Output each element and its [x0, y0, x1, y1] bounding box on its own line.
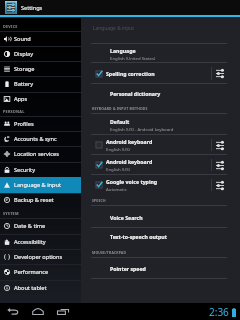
staticText: Google voice typing [106, 178, 158, 185]
staticText: Sound [14, 35, 31, 43]
button[interactable]: Apps [0, 92, 81, 106]
staticText: MOUSE/TRACKPAD [92, 250, 127, 255]
staticText: English (US) [106, 166, 130, 172]
button[interactable]: Accessibility [0, 234, 81, 249]
button[interactable]: Display [0, 46, 81, 61]
staticText: Accessibility [14, 238, 46, 246]
staticText: Default [110, 118, 130, 125]
button[interactable]: Storage [0, 61, 81, 76]
button[interactable]: Google voice typing [81, 175, 240, 195]
button[interactable]: Configure [212, 175, 228, 195]
button[interactable]: Accounts & sync [0, 131, 81, 146]
button[interactable]: Android keyboard [81, 155, 240, 175]
button[interactable]: Voice Search [81, 206, 240, 228]
staticText: Automatic [106, 186, 127, 192]
button[interactable]: Personal dictionary [81, 84, 240, 102]
button[interactable]: Performance [0, 264, 81, 280]
button[interactable]: Text-to-speech output [81, 228, 240, 245]
button[interactable]: Battery [0, 76, 81, 92]
button[interactable]: Configure [212, 155, 228, 175]
button[interactable]: Pointer speed [81, 258, 240, 279]
staticText: SYSTEM [3, 211, 19, 216]
button[interactable]: Language [81, 44, 240, 63]
staticText: Android keyboard [106, 138, 153, 145]
button[interactable]: Backup & reset [0, 193, 81, 207]
button[interactable]: About tablet [0, 280, 81, 295]
button[interactable]: Recent apps [51, 303, 74, 320]
button[interactable]: Location services [0, 146, 81, 162]
button[interactable]: Profiles [0, 116, 81, 131]
staticText: Voice Search [110, 214, 143, 221]
staticText: Backup & reset [14, 196, 54, 204]
button[interactable]: Default [81, 114, 240, 135]
button[interactable]: Configure [212, 135, 228, 155]
button[interactable]: Back [1, 303, 24, 320]
staticText: Performance [14, 268, 49, 276]
staticText: SPEECH [92, 198, 106, 203]
staticText: Language [110, 47, 136, 54]
staticText: 2:36 [209, 305, 229, 319]
staticText: PERSONAL [3, 109, 25, 114]
staticText: Storage [14, 65, 35, 73]
staticText: Spelling correction [106, 70, 155, 77]
button[interactable]: Security [0, 162, 81, 177]
button[interactable]: Date & time [0, 218, 81, 234]
staticText: Settings [21, 4, 43, 12]
staticText: DEVICE [3, 24, 18, 29]
staticText: English (US) [106, 146, 130, 152]
staticText: Date & time [14, 222, 46, 230]
staticText: Personal dictionary [110, 90, 161, 97]
button[interactable]: Configure [212, 63, 228, 84]
button[interactable]: Spelling correction [81, 63, 240, 84]
staticText: Language & input [14, 181, 61, 189]
staticText: Developer options [14, 253, 63, 261]
staticText: Battery [14, 80, 34, 88]
staticText: About tablet [14, 284, 47, 292]
button[interactable]: Language & input [0, 177, 81, 193]
staticText: KEYBOARD & INPUT METHODS [92, 106, 148, 111]
staticText: Display [14, 50, 34, 58]
button[interactable]: Home [26, 303, 49, 320]
button[interactable]: Android keyboard [81, 135, 240, 155]
staticText: Profiles [14, 120, 34, 128]
button[interactable]: Developer options [0, 249, 81, 264]
staticText: Text-to-speech output [110, 233, 167, 240]
staticText: English (United States) [110, 55, 156, 61]
staticText: Android keyboard [106, 158, 153, 165]
staticText: Security [14, 166, 35, 174]
staticText: English (US) - Android keyboard [110, 126, 174, 132]
staticText: Accounts & sync [14, 135, 57, 143]
button[interactable]: Sound [0, 31, 81, 46]
staticText: Pointer speed [110, 265, 146, 272]
staticText: Location services [14, 150, 59, 158]
staticText: Language & input [93, 25, 135, 32]
staticText: Apps [14, 95, 28, 103]
